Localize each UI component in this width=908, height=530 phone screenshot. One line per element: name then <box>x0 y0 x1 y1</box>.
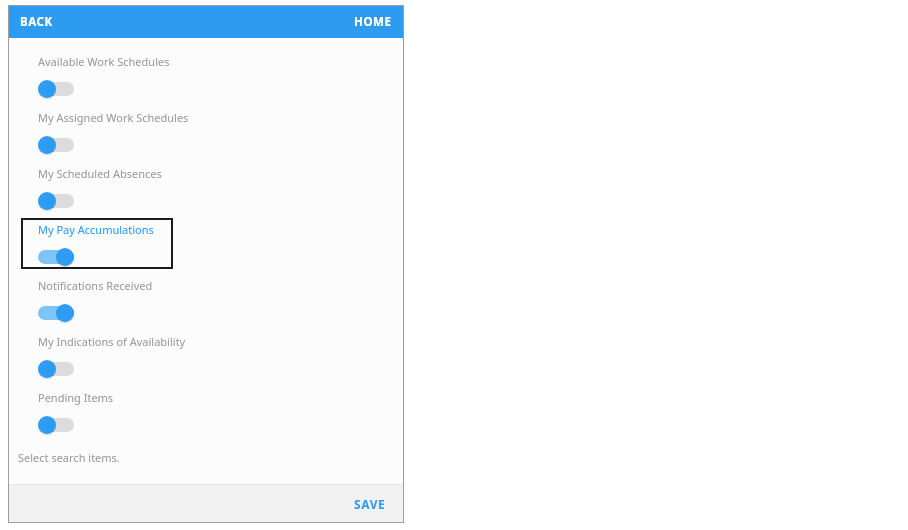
button[interactable]: Pending Items <box>8 384 404 434</box>
button[interactable]: HOME <box>342 5 404 38</box>
button[interactable]: Toggle off <box>38 192 74 210</box>
staticText: Notifications Received <box>38 278 153 293</box>
button[interactable]: Notifications Received <box>8 272 404 322</box>
button[interactable]: Toggle off <box>38 360 74 378</box>
staticText: Pending Items <box>38 390 114 405</box>
button[interactable]: SAVE <box>338 485 404 523</box>
staticText: My Indications of Availability <box>38 334 186 349</box>
staticText: My Assigned Work Schedules <box>38 110 189 125</box>
button[interactable]: BACK <box>8 5 65 38</box>
staticText: BACK <box>20 14 53 30</box>
button[interactable]: Toggle off <box>38 136 74 154</box>
button[interactable]: Toggle off <box>38 80 74 98</box>
staticText: Available Work Schedules <box>38 54 170 69</box>
staticText: My Scheduled Absences <box>38 166 162 181</box>
button[interactable]: My Scheduled Absences <box>8 160 404 210</box>
staticText: Select search items. <box>18 450 120 465</box>
button[interactable]: Toggle on <box>38 304 74 322</box>
button[interactable]: Available Work Schedules <box>8 48 404 98</box>
button[interactable]: My Indications of Availability <box>8 328 404 378</box>
staticText: My Pay Accumulations <box>38 222 154 237</box>
button[interactable]: Toggle on <box>38 248 74 266</box>
button[interactable]: Toggle off <box>38 416 74 434</box>
button[interactable]: My Assigned Work Schedules <box>8 104 404 154</box>
staticText: SAVE <box>354 496 386 512</box>
staticText: HOME <box>354 14 392 30</box>
button[interactable]: My Pay Accumulations <box>8 216 404 266</box>
